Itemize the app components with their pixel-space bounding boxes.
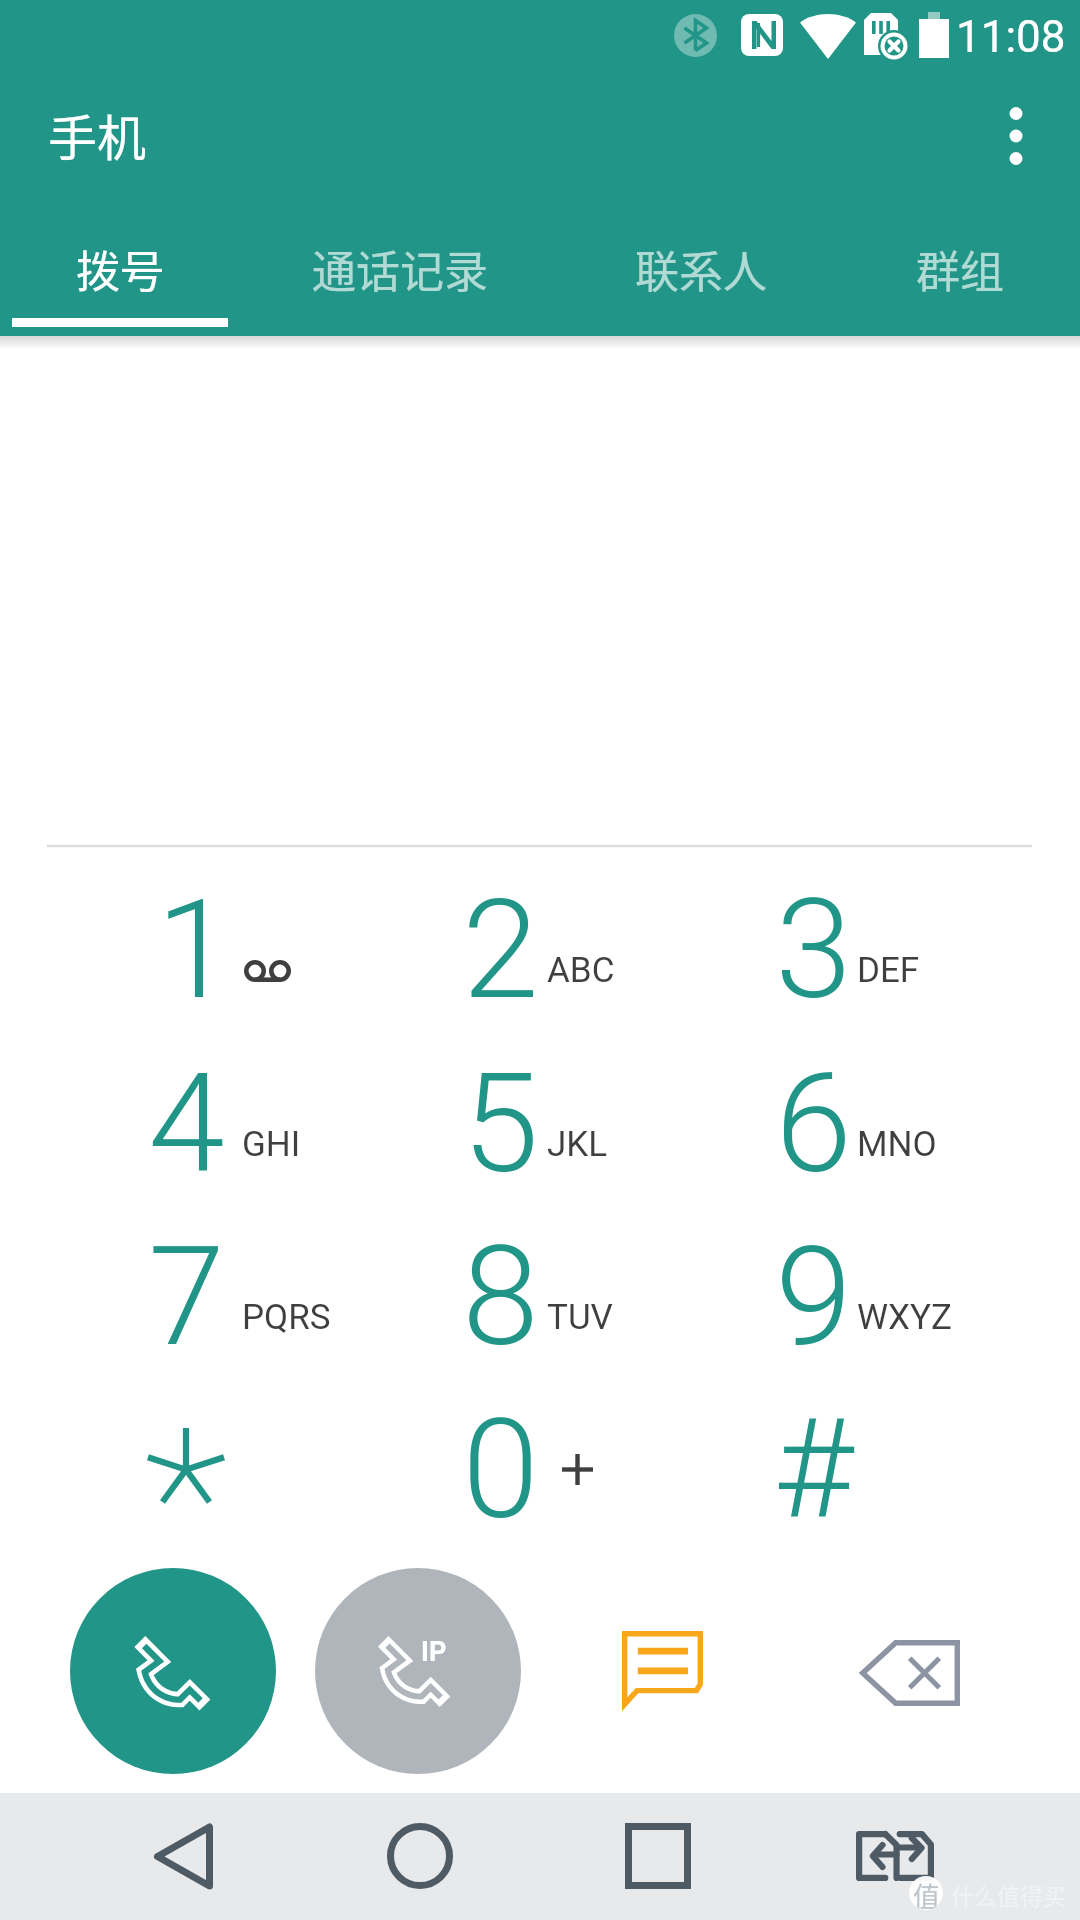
staticText: # <box>773 1389 854 1551</box>
staticText: 0 <box>462 1389 539 1551</box>
button[interactable]: Home <box>350 1796 490 1916</box>
staticText: GHI <box>242 1124 301 1165</box>
button[interactable]: 拨号 <box>0 208 236 336</box>
staticText: 1 <box>156 869 233 1031</box>
button[interactable]: Call <box>70 1568 276 1774</box>
staticText: 值 <box>913 1876 940 1910</box>
button[interactable]: 6 <box>656 1036 970 1209</box>
staticText: 5 <box>462 1043 539 1205</box>
button[interactable]: 通话记录 <box>236 208 557 336</box>
staticText: DEF <box>857 950 920 991</box>
button[interactable]: 7 <box>29 1209 343 1382</box>
staticText: 群组 <box>916 237 1004 301</box>
button[interactable]: More options <box>972 92 1060 180</box>
button[interactable]: 联系人 <box>557 208 834 336</box>
button[interactable]: 1 <box>29 862 343 1035</box>
button[interactable]: 群组 <box>834 208 1080 336</box>
button[interactable]: Recents <box>588 1796 728 1916</box>
staticText: 8 <box>462 1216 539 1378</box>
staticText: ABC <box>547 950 615 991</box>
staticText: WXYZ <box>857 1297 952 1338</box>
staticText: IP <box>421 1636 447 1668</box>
staticText: 9 <box>775 1216 852 1378</box>
staticText: 4 <box>148 1043 225 1205</box>
button[interactable]: # <box>656 1382 970 1555</box>
staticText: TUV <box>547 1297 613 1338</box>
staticText: 11:08 <box>956 11 1066 63</box>
button[interactable]: 4 <box>29 1036 343 1209</box>
staticText: JKL <box>547 1124 608 1165</box>
button[interactable]: 5 <box>343 1036 657 1209</box>
staticText: 什么值得买 <box>951 1878 1066 1911</box>
button[interactable]: 0 <box>343 1382 657 1555</box>
button[interactable]: Backspace <box>840 1603 980 1743</box>
staticText: 手机 <box>48 99 147 170</box>
staticText: 7 <box>148 1216 225 1378</box>
button[interactable]: IP call <box>315 1568 521 1774</box>
button[interactable]: 9 <box>656 1209 970 1382</box>
staticText: 拨号 <box>76 237 164 301</box>
button[interactable]: Switch apps <box>825 1796 965 1916</box>
staticText: 通话记录 <box>312 237 488 301</box>
staticText: 联系人 <box>635 237 767 301</box>
button[interactable]: Message <box>592 1599 732 1739</box>
staticText: MNO <box>857 1124 937 1165</box>
button[interactable]: Back <box>113 1796 253 1916</box>
staticText: 2 <box>462 869 539 1031</box>
staticText: 6 <box>775 1043 852 1205</box>
button[interactable]: 3 <box>656 862 970 1035</box>
staticText: 3 <box>775 869 852 1031</box>
button[interactable]: 8 <box>343 1209 657 1382</box>
button[interactable]: 2 <box>343 862 657 1035</box>
staticText: PQRS <box>242 1297 331 1338</box>
button[interactable] <box>29 1382 343 1555</box>
